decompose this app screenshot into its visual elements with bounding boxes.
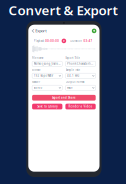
- staticText: Bitrate: [32, 68, 41, 72]
- staticText: 192 kbps WAV: [33, 74, 53, 77]
- staticText: Filename: [32, 56, 44, 60]
- staticText: 44.1 kHz: [67, 74, 79, 77]
- staticText: Master: [32, 80, 40, 84]
- staticText: Export and Share: [52, 96, 76, 99]
- staticText: Export Title: [65, 56, 80, 60]
- staticText: Save to Library: [37, 105, 57, 108]
- staticText: Render a Video: [69, 105, 93, 108]
- button[interactable]: Share: [91, 28, 97, 34]
- button[interactable]: Save to Library: [32, 104, 62, 109]
- staticText: Playback: [34, 39, 44, 43]
- staticText: Duration: [70, 39, 82, 43]
- staticText: 00:00:00: [45, 39, 59, 43]
- button[interactable]: Back: [31, 28, 35, 34]
- staticText: Phonk Characterline: [67, 62, 94, 65]
- staticText: Sample rate: [65, 68, 80, 72]
- staticText: Output Format: [65, 80, 84, 84]
- staticText: Wolkes_song_trailer_fin: [33, 62, 61, 65]
- button[interactable]: Export and Share: [32, 95, 96, 101]
- button[interactable]: Render a Video: [65, 104, 96, 109]
- staticText: Convert & Export: [8, 1, 117, 19]
- staticText: 03:47: [84, 39, 93, 43]
- staticText: Export: [35, 28, 47, 33]
- button[interactable]: Play: [61, 38, 67, 44]
- staticText: WAV: [67, 86, 73, 89]
- staticText: Stereo: [33, 86, 42, 89]
